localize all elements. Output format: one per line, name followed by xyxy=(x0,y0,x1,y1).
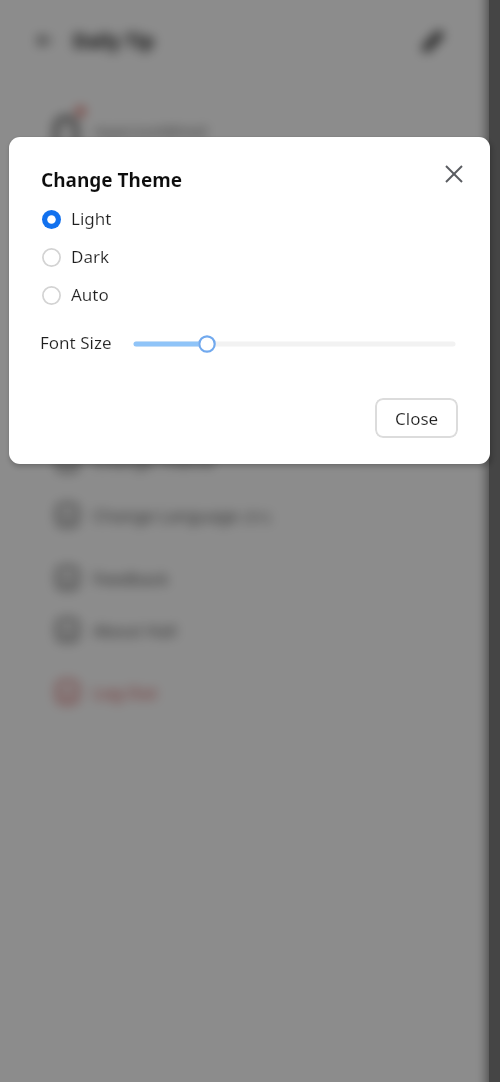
staticText: Font Size xyxy=(40,331,112,354)
staticText: Feedback xyxy=(93,567,169,590)
staticText: Daily Tip xyxy=(73,28,155,54)
staticText: Dark xyxy=(71,245,110,268)
staticText: Change Language xyxy=(93,504,239,527)
button[interactable]: Font size slider xyxy=(127,332,462,356)
staticText: Change Theme xyxy=(41,167,183,193)
button[interactable]: Close dialog xyxy=(437,157,471,191)
staticText: About Hall xyxy=(93,619,177,642)
staticText: Change Theme xyxy=(93,449,214,472)
staticText: Auto xyxy=(71,283,109,306)
button[interactable]: Auto xyxy=(9,276,490,314)
staticText: myaccount@mail xyxy=(94,122,208,141)
button[interactable]: Light xyxy=(9,200,490,238)
button[interactable]: Dark xyxy=(9,238,490,276)
staticText: Light xyxy=(71,207,112,230)
staticText: Log Out xyxy=(93,681,157,704)
button[interactable]: Close xyxy=(375,398,458,438)
staticText: Close xyxy=(395,407,439,430)
staticText: (En) xyxy=(244,506,271,526)
